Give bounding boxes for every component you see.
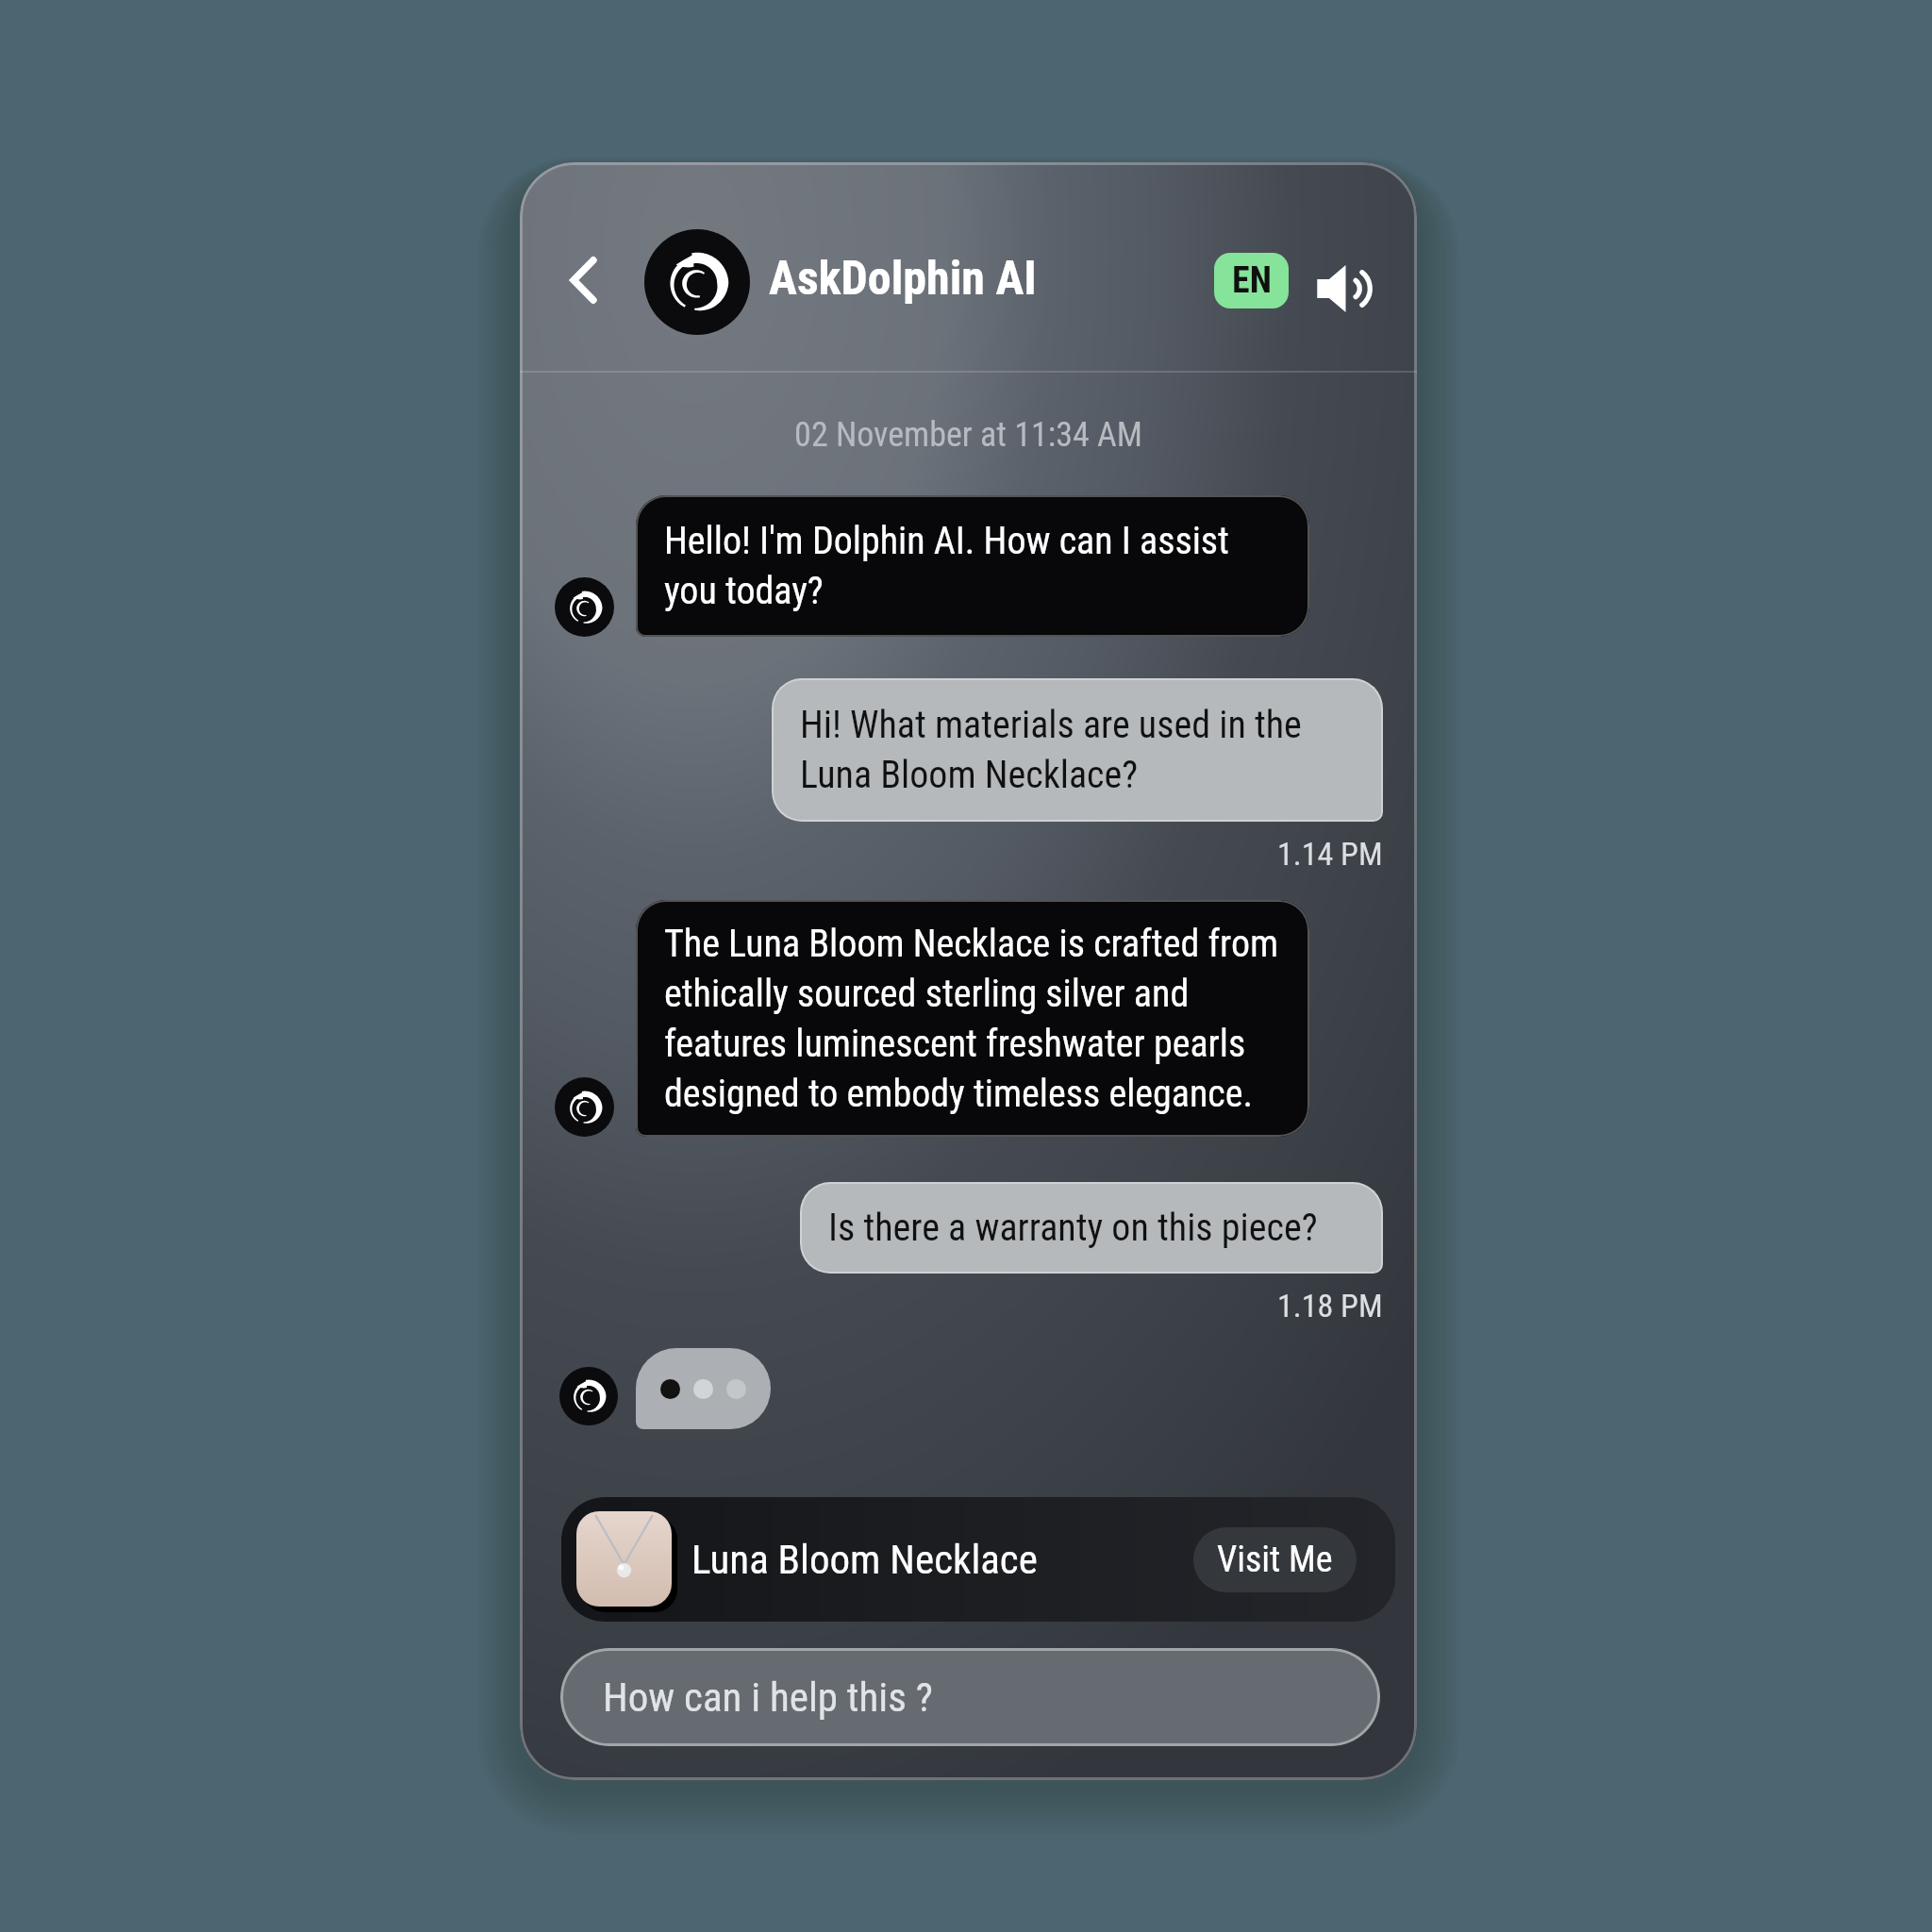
button[interactable]: How can i help this ?	[560, 1648, 1380, 1746]
button[interactable]: Luna Bloom Necklace	[561, 1497, 1395, 1622]
button[interactable]: Back	[553, 250, 613, 310]
staticText: How can i help this ?	[603, 1674, 933, 1721]
button[interactable]: Sound	[1307, 251, 1383, 326]
staticText: Luna Bloom Necklace	[691, 1536, 1038, 1583]
staticText: The Luna Bloom Necklace is crafted from …	[664, 922, 1287, 1116]
button[interactable]: EN	[1214, 253, 1289, 308]
staticText: Hi! What materials are used in the Luna …	[800, 703, 1360, 797]
button[interactable]: Hi! What materials are used in the Luna …	[772, 678, 1383, 822]
staticText: Is there a warranty on this piece?	[828, 1206, 1318, 1250]
staticText: 1.14 PM	[1277, 835, 1383, 873]
button[interactable]: Visit Me	[1193, 1527, 1357, 1592]
button[interactable]: Hello! I'm Dolphin AI. How can I assist …	[636, 495, 1309, 637]
button[interactable]	[636, 1348, 771, 1429]
staticText: 1.18 PM	[1277, 1287, 1383, 1324]
staticText: Visit Me	[1217, 1539, 1333, 1581]
button[interactable]: Is there a warranty on this piece?	[800, 1182, 1383, 1274]
staticText: EN	[1232, 259, 1272, 302]
button[interactable]: The Luna Bloom Necklace is crafted from …	[636, 900, 1309, 1137]
staticText: Hello! I'm Dolphin AI. How can I assist …	[664, 519, 1287, 613]
staticText: 02 November at 11:34 AM	[520, 415, 1417, 455]
staticText: AskDolphin AI	[769, 251, 1037, 307]
